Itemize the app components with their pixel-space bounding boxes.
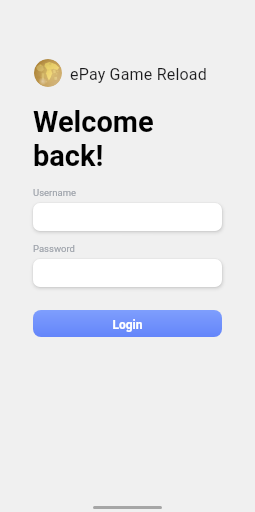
button[interactable]: ePay globe logo: [34, 58, 207, 87]
staticText: Password: [33, 243, 75, 254]
staticText: Login: [112, 318, 143, 332]
other: ePay globe logo: [34, 59, 62, 87]
button[interactable]: Login: [33, 310, 222, 337]
staticText: ePay Game Reload: [70, 65, 207, 84]
staticText: Username: [33, 187, 77, 198]
staticText: Welcome back!: [33, 105, 154, 173]
